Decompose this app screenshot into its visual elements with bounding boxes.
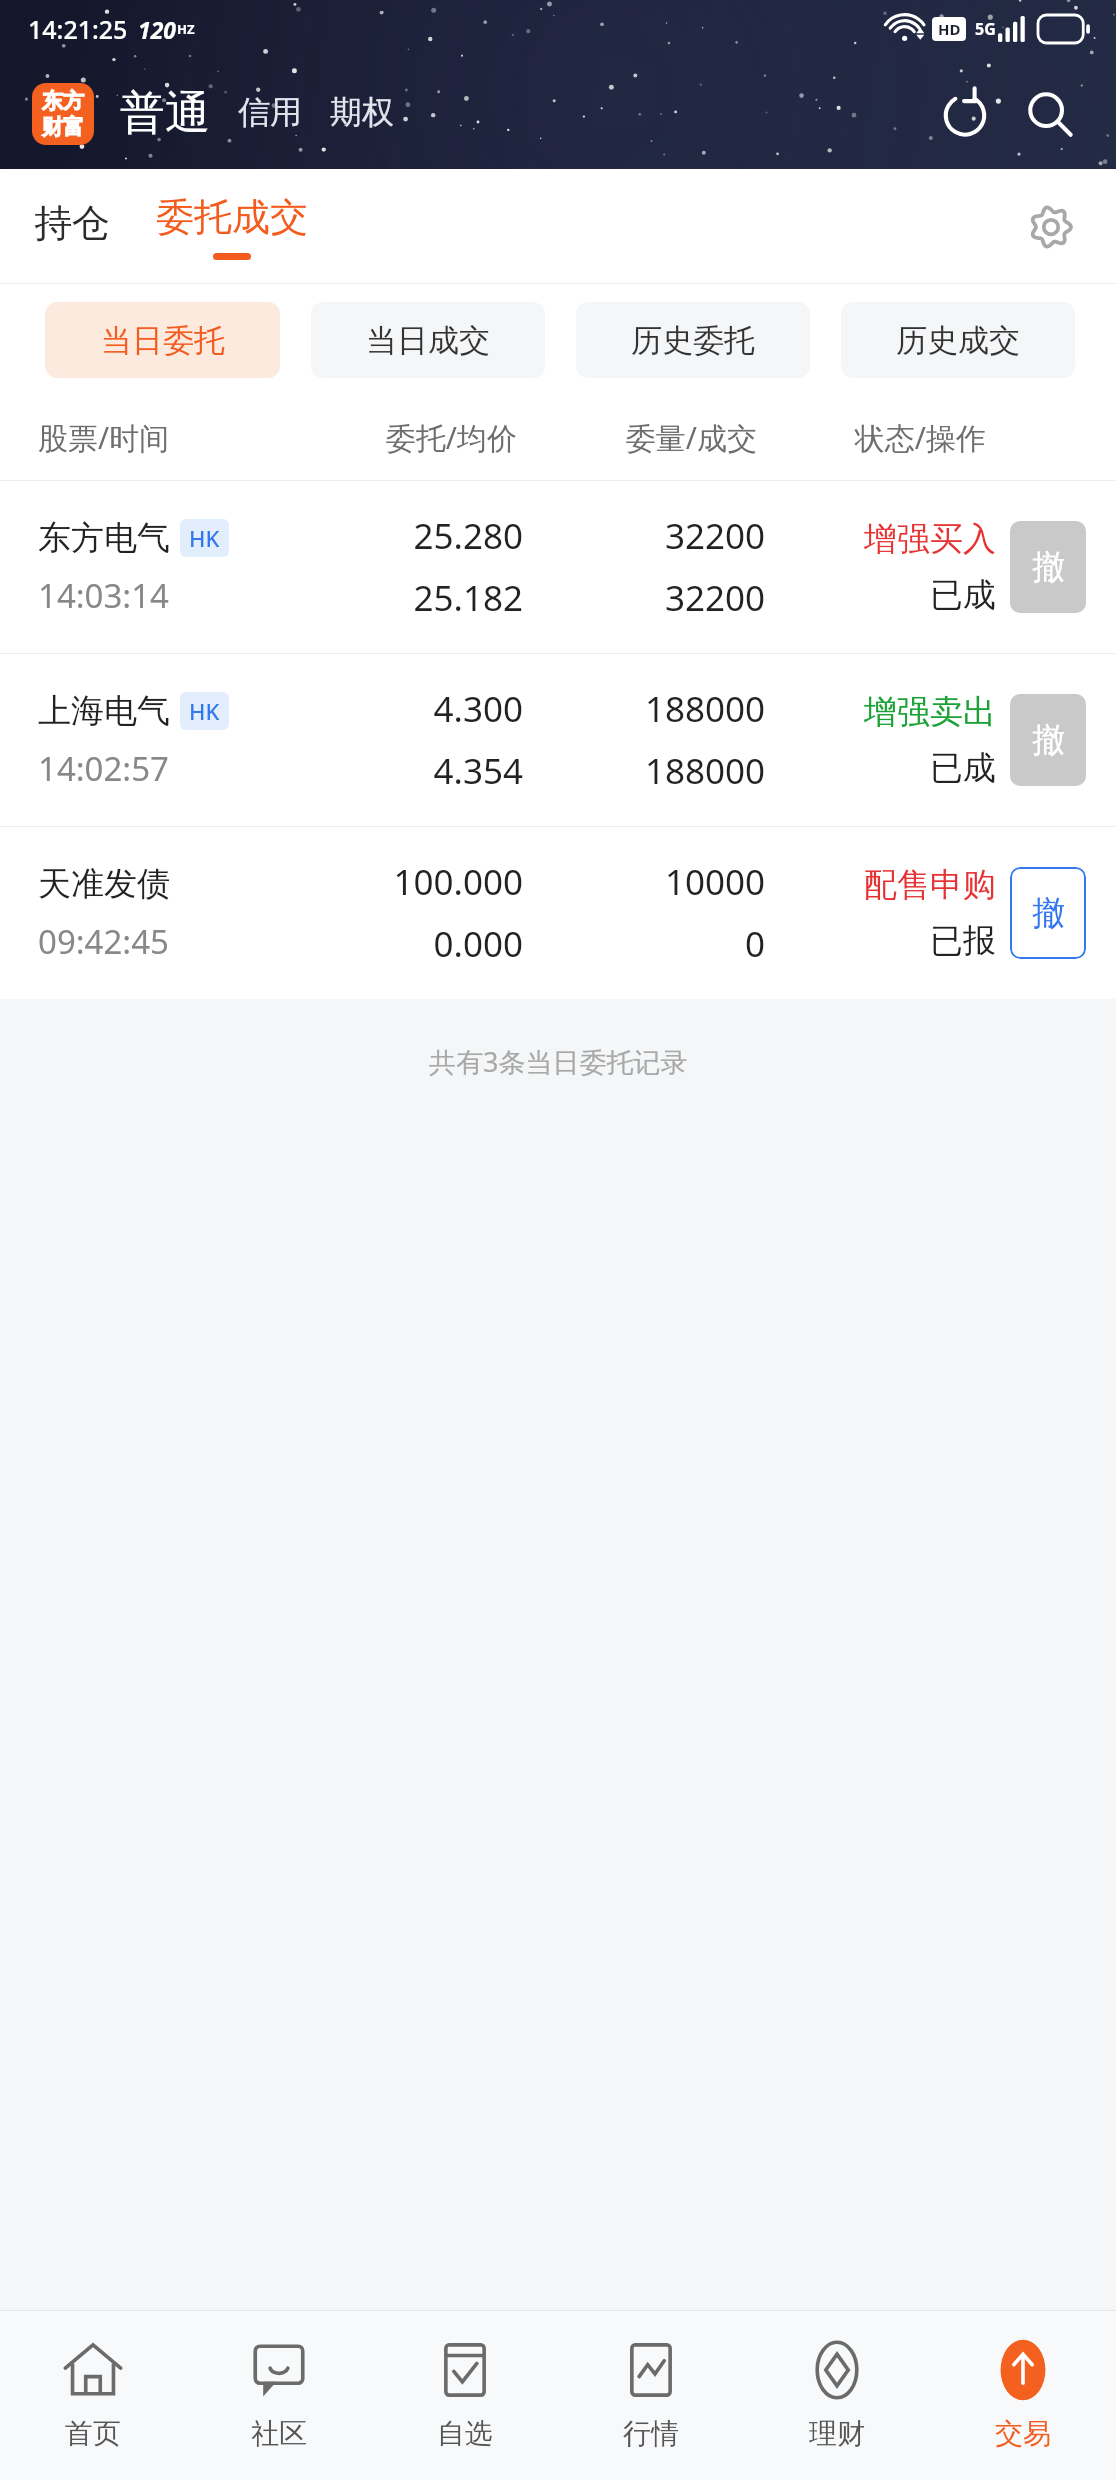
staticText: 增强卖出 — [765, 691, 996, 733]
staticText: 东方电气 — [38, 517, 170, 559]
staticText: 当日成交 — [366, 321, 490, 360]
staticText: 0 — [523, 920, 765, 968]
staticText: 首页 — [65, 2416, 121, 2451]
staticText: 共有3条当日委托记录 — [429, 1043, 688, 1080]
staticText: 14:02:57 — [38, 746, 169, 791]
button[interactable]: 首页 — [0, 2311, 186, 2480]
button[interactable]: 普通 — [120, 85, 210, 142]
staticText: 0.000 — [292, 920, 523, 968]
staticText: 委托成交 — [156, 193, 308, 241]
button[interactable]: 刷新 — [932, 81, 998, 147]
button[interactable]: 设置 — [1016, 192, 1086, 262]
staticText: 25.280 — [292, 512, 523, 560]
button[interactable]: 东方财富 — [32, 83, 94, 145]
staticText: 自选 — [437, 2416, 493, 2451]
staticText: HZ — [177, 20, 195, 38]
staticText: 撤 — [1032, 892, 1065, 934]
button[interactable]: 自选 — [372, 2311, 558, 2480]
staticText: 已报 — [765, 920, 996, 962]
staticText: 天准发债 — [38, 863, 170, 905]
staticText: 社区 — [251, 2416, 307, 2451]
staticText: HD — [938, 19, 961, 39]
button[interactable]: 当日委托 — [45, 302, 280, 378]
staticText: 已成 — [765, 574, 996, 616]
button[interactable]: 社区 — [186, 2311, 372, 2480]
staticText: 撤 — [1032, 546, 1065, 588]
staticText: 14:21:25 — [28, 12, 128, 46]
button[interactable]: 持仓 — [34, 199, 114, 255]
button[interactable]: 撤 — [1010, 867, 1086, 959]
staticText: 10000 — [523, 858, 765, 906]
staticText: 信用 — [238, 92, 302, 132]
staticText: 行情 — [623, 2416, 679, 2451]
staticText: 14:03:14 — [38, 573, 169, 618]
staticText: 120 — [138, 14, 177, 45]
button[interactable]: 行情 — [558, 2311, 744, 2480]
staticText: 4.300 — [292, 685, 523, 733]
staticText: 财富 — [42, 114, 84, 140]
button[interactable]: 信用 — [238, 92, 302, 136]
staticText: HK — [189, 696, 220, 726]
staticText: 配售申购 — [765, 864, 996, 906]
staticText: 32200 — [523, 512, 765, 560]
button[interactable]: 撤 — [1010, 521, 1086, 613]
staticText: 100.000 — [292, 858, 523, 906]
staticText: 188000 — [523, 747, 765, 795]
staticText: 交易 — [995, 2416, 1051, 2451]
staticText: 状态/操作 — [757, 417, 986, 458]
button[interactable]: 交易 — [930, 2311, 1116, 2480]
staticText: 09:42:45 — [38, 919, 169, 964]
staticText: 增强买入 — [765, 518, 996, 560]
staticText: 4.354 — [292, 747, 523, 795]
staticText: 理财 — [809, 2416, 865, 2451]
button[interactable]: 东方电气 — [0, 481, 1116, 653]
button[interactable]: 期权 — [330, 92, 394, 136]
staticText: 当日委托 — [101, 321, 225, 360]
button[interactable]: 委托成交 — [156, 193, 308, 260]
staticText: 上海电气 — [38, 690, 170, 732]
button[interactable]: 历史委托 — [576, 302, 810, 378]
staticText: 股票/时间 — [38, 417, 288, 458]
staticText: 期权 — [330, 92, 394, 132]
staticText: 188000 — [523, 685, 765, 733]
button[interactable]: 理财 — [744, 2311, 930, 2480]
staticText: 东方 — [42, 88, 84, 114]
staticText: 持仓 — [34, 199, 110, 247]
staticText: HK — [189, 523, 220, 553]
staticText: 普通 — [120, 85, 210, 142]
staticText: 委量/成交 — [517, 417, 757, 458]
staticText: 撤 — [1032, 719, 1065, 761]
staticText: 5G — [975, 18, 996, 40]
button[interactable]: 当日成交 — [311, 302, 545, 378]
staticText: 32200 — [523, 574, 765, 622]
staticText: 25.182 — [292, 574, 523, 622]
button[interactable]: 搜索 — [1016, 81, 1082, 147]
staticText: 历史成交 — [896, 321, 1020, 360]
button[interactable]: 天准发债 — [0, 827, 1116, 999]
button[interactable]: 上海电气 — [0, 654, 1116, 826]
staticText: 已成 — [765, 747, 996, 789]
button[interactable]: 历史成交 — [841, 302, 1075, 378]
button[interactable]: 撤 — [1010, 694, 1086, 786]
staticText: 委托/均价 — [288, 417, 517, 458]
staticText: 历史委托 — [631, 321, 755, 360]
